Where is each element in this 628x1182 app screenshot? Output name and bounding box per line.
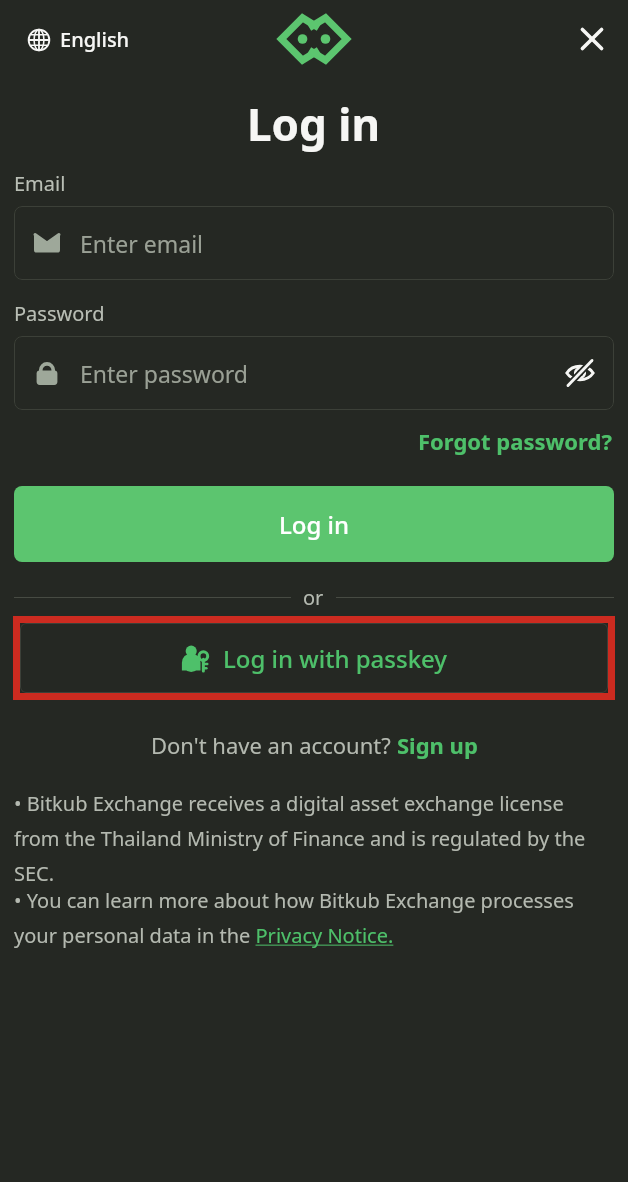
other: Bitkub logo [286, 16, 342, 62]
staticText: Forgot password? [418, 426, 612, 456]
button[interactable]: Close [570, 17, 614, 61]
button[interactable]: Forgot password? [416, 424, 614, 458]
staticText: Log in with passkey [223, 642, 448, 675]
staticText: Password [14, 300, 105, 327]
staticText: • Bitkub Exchange receives a digital ass… [14, 790, 614, 887]
button[interactable]: Log in [14, 486, 614, 562]
staticText: Enter password [80, 358, 558, 389]
staticText: or [303, 584, 324, 610]
staticText: Don't have an account? [151, 730, 397, 760]
button[interactable]: Enter password [14, 336, 614, 410]
staticText: English [60, 26, 130, 53]
button[interactable]: • You can learn more about how Bitkub Ex… [14, 887, 614, 949]
button[interactable]: Log in with passkey [20, 623, 608, 693]
staticText: Email [14, 170, 66, 197]
button[interactable]: Sign up [397, 730, 478, 760]
staticText: Enter email [80, 228, 602, 259]
button[interactable]: Show password [558, 351, 602, 395]
staticText: Log in [279, 508, 350, 541]
button[interactable]: Enter email [14, 206, 614, 280]
button[interactable]: English [20, 20, 138, 59]
staticText: Log in [247, 94, 381, 154]
staticText: Sign up [397, 730, 478, 760]
